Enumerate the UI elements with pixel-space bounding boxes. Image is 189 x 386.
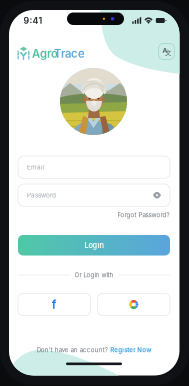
button[interactable]: Continue with Google [97, 293, 170, 315]
button[interactable]: Change language [153, 38, 179, 64]
staticText: Login [84, 241, 103, 250]
staticText: A [162, 46, 167, 54]
button[interactable]: Forgot Password? [113, 210, 169, 220]
staticText: Agro [32, 47, 58, 61]
button[interactable]: Register Now [110, 346, 151, 354]
button[interactable]: Email [18, 156, 170, 178]
staticText: Or Login with [74, 271, 113, 279]
button[interactable]: Continue with Facebook [18, 293, 90, 315]
staticText: f [52, 297, 57, 312]
staticText: Email [27, 163, 45, 171]
button[interactable]: Password [18, 184, 170, 206]
staticText: Don't have an account? [37, 346, 108, 354]
staticText: Register Now [110, 346, 151, 354]
staticText: Password [27, 191, 56, 199]
staticText: Trace [54, 47, 85, 61]
staticText: 9:41 [23, 15, 42, 26]
button[interactable]: Login [18, 235, 170, 255]
staticText: Forgot Password? [117, 211, 169, 219]
staticText: 文 [165, 49, 172, 57]
